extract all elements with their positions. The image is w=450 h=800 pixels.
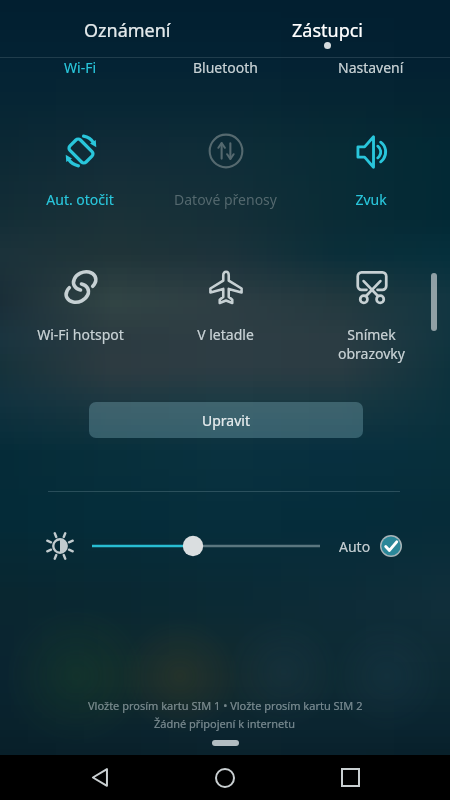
staticText: V letadle xyxy=(197,325,254,344)
staticText: Bluetooth xyxy=(193,58,258,77)
button[interactable]: Oznámení xyxy=(47,0,207,55)
staticText: Aut. otočit xyxy=(46,190,114,209)
button[interactable]: Back xyxy=(75,755,125,800)
staticText: Snímek obrazovky xyxy=(338,325,405,363)
staticText: Wi-Fi xyxy=(64,58,97,77)
button[interactable]: Brightness xyxy=(44,530,76,562)
staticText: Upravit xyxy=(202,411,250,430)
button[interactable]: Wi-Fi xyxy=(8,51,152,83)
button[interactable]: Upravit xyxy=(89,402,363,438)
button[interactable]: Home xyxy=(200,755,250,800)
button[interactable] xyxy=(86,532,326,560)
staticText: Wi-Fi hotspot xyxy=(37,325,124,344)
button[interactable]: Nastavení xyxy=(299,51,443,83)
staticText: Zástupci xyxy=(292,18,363,43)
button[interactable]: Aut. otočit xyxy=(8,123,152,239)
button[interactable]: Zástupci xyxy=(247,0,407,55)
staticText: Oznámení xyxy=(84,18,171,43)
staticText: Auto xyxy=(339,537,371,556)
button[interactable]: Wi-Fi hotspot xyxy=(8,259,152,374)
button[interactable]: V letadle xyxy=(153,259,297,374)
staticText: Nastavení xyxy=(338,58,404,77)
staticText: Žádné připojení k internetu xyxy=(154,716,296,731)
button[interactable]: Zvuk xyxy=(299,124,443,239)
staticText: Zvuk xyxy=(355,190,387,209)
button[interactable]: Recents xyxy=(325,755,375,800)
button[interactable]: Bluetooth xyxy=(153,51,297,83)
button[interactable]: Auto xyxy=(339,532,402,560)
button[interactable]: Datové přenosy xyxy=(153,123,297,239)
button[interactable]: Snímek obrazovky xyxy=(299,259,443,374)
staticText: Datové přenosy xyxy=(174,190,277,209)
staticText: Vložte prosím kartu SIM 1 • Vložte prosí… xyxy=(88,698,363,713)
